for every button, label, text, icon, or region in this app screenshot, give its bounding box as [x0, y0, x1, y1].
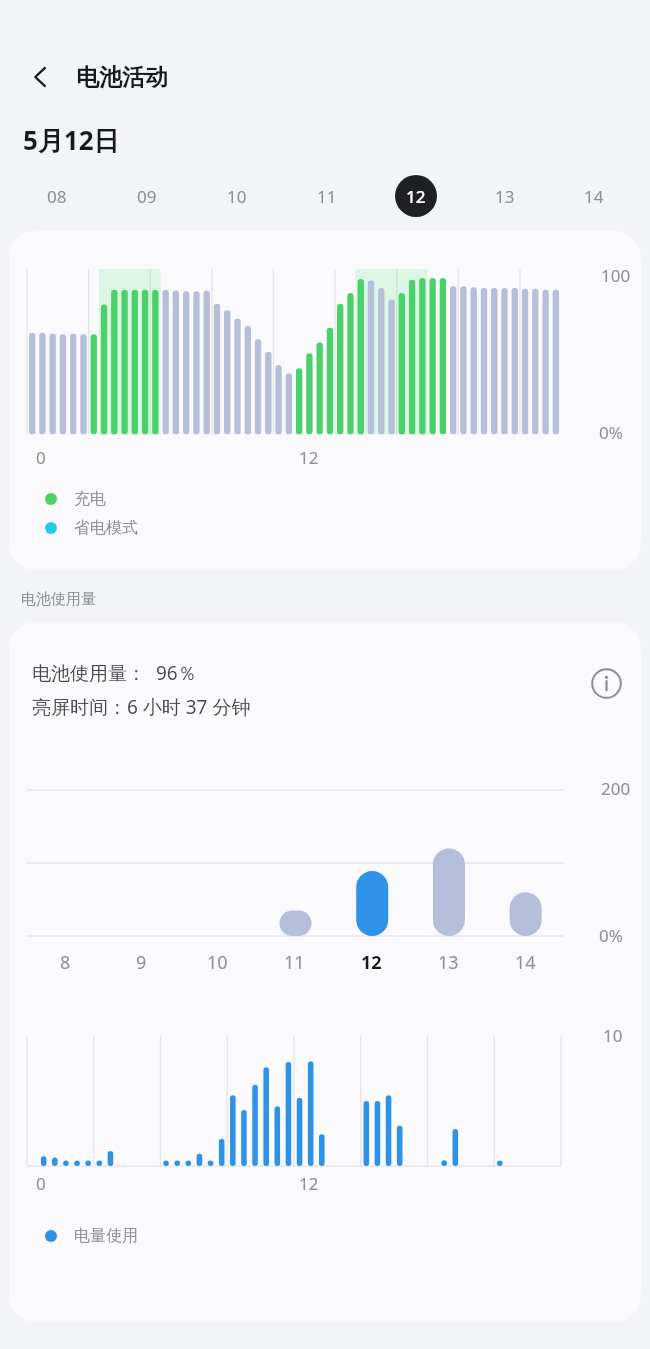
button[interactable]: 省电模式 [45, 518, 138, 538]
button[interactable]: Back [18, 55, 62, 99]
staticText: 100 [601, 264, 631, 287]
button[interactable]: 13 [460, 170, 549, 222]
staticText: 充电 [74, 489, 106, 509]
staticText: 12 [299, 1172, 319, 1195]
staticText: 09 [137, 185, 157, 208]
staticText: 11 [317, 185, 337, 208]
staticText: 0 [36, 446, 46, 469]
staticText: 电池使用量 [21, 590, 96, 609]
staticText: 0% [599, 924, 623, 947]
staticText: 5月12日 [23, 122, 120, 158]
staticText: 亮屏时间：6 小时 37 分钟 [32, 694, 251, 720]
button[interactable]: 12 [371, 170, 460, 222]
button[interactable]: 11 [282, 170, 371, 222]
staticText: 电池使用量： 96％ [32, 660, 197, 686]
staticText: 电量使用 [74, 1226, 138, 1246]
staticText: 200 [601, 777, 631, 800]
staticText: 13 [438, 950, 459, 975]
staticText: 13 [495, 185, 515, 208]
staticText: 12 [406, 185, 426, 208]
staticText: 12 [361, 950, 382, 975]
staticText: 0% [599, 421, 623, 444]
button[interactable]: 08 [12, 170, 102, 222]
button[interactable]: 14 [549, 170, 638, 222]
button[interactable]: 充电 [45, 489, 106, 509]
staticText: 0 [36, 1172, 46, 1195]
staticText: 9 [136, 950, 147, 975]
staticText: 省电模式 [74, 518, 138, 538]
button[interactable]: 电量使用 [45, 1226, 138, 1246]
staticText: 12 [299, 446, 319, 469]
staticText: 电池活动 [76, 63, 168, 92]
button[interactable]: 100 [9, 231, 641, 570]
staticText: 8 [60, 950, 71, 975]
staticText: 10 [207, 950, 228, 975]
staticText: 14 [515, 950, 536, 975]
staticText: 11 [284, 950, 305, 975]
button[interactable]: Info [583, 660, 629, 706]
staticText: 08 [47, 185, 67, 208]
staticText: 10 [603, 1024, 623, 1047]
button[interactable]: 10 [192, 170, 282, 222]
button[interactable]: 09 [102, 170, 192, 222]
staticText: 14 [584, 185, 604, 208]
staticText: 10 [227, 185, 247, 208]
